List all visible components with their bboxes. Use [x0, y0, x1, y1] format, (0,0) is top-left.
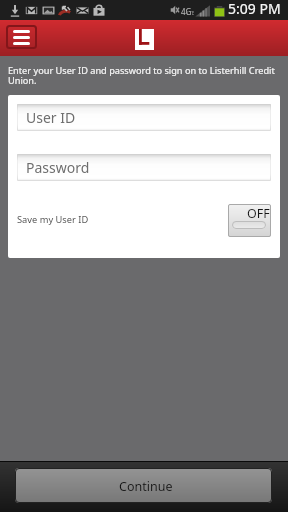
button[interactable]: Menu [6, 25, 37, 49]
staticText: LTE [187, 10, 195, 16]
staticText: 5:09 PM [228, 0, 281, 18]
button[interactable]: Continue [15, 468, 272, 503]
staticText: Save my User ID [17, 213, 89, 226]
button[interactable]: Password [17, 154, 271, 181]
button[interactable]: User ID [17, 104, 271, 131]
staticText: Enter your User ID and password to sign … [8, 64, 280, 87]
staticText: OFF [247, 205, 270, 222]
button[interactable]: Save my User ID, off [228, 204, 271, 237]
staticText: Password [26, 158, 90, 177]
staticText: Continue [119, 478, 173, 495]
staticText: User ID [26, 108, 76, 127]
staticText: 4G [181, 6, 192, 17]
